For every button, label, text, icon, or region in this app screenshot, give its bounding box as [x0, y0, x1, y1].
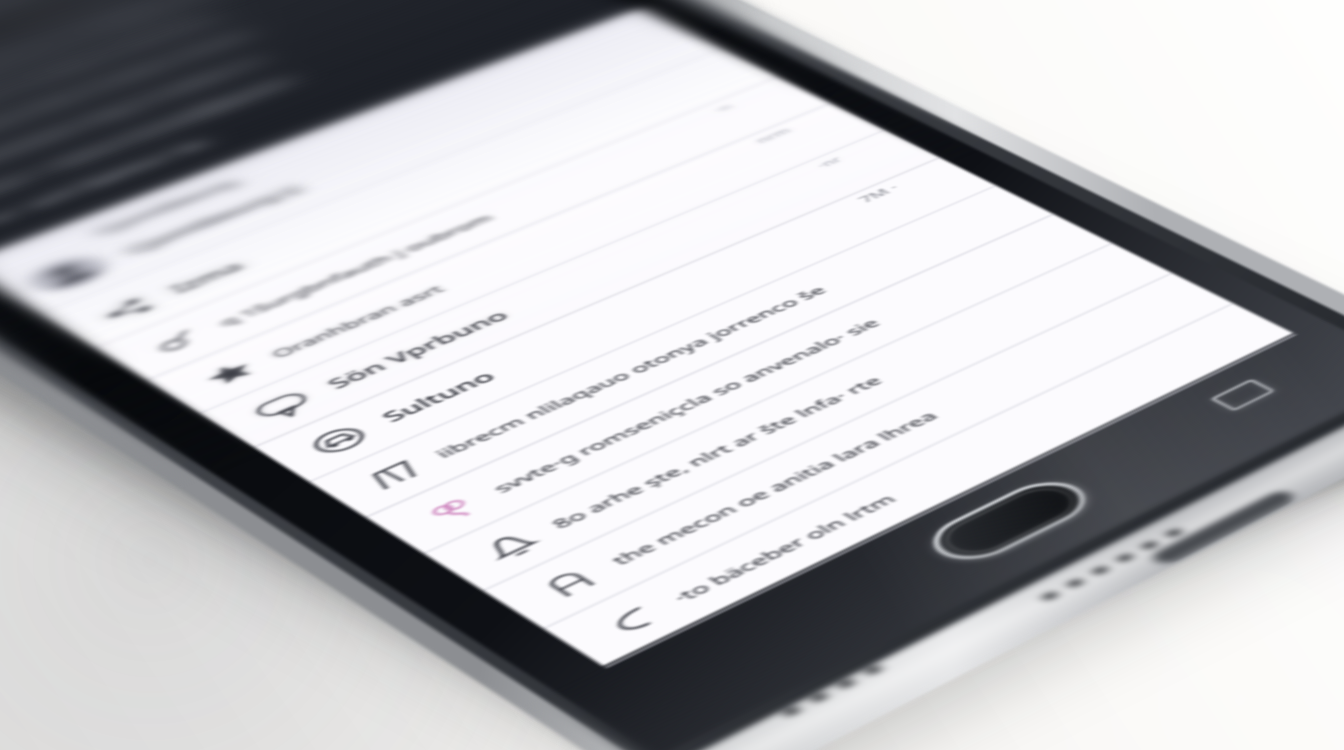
button[interactable]: Phone showing a settings list: [0, 0, 1344, 750]
